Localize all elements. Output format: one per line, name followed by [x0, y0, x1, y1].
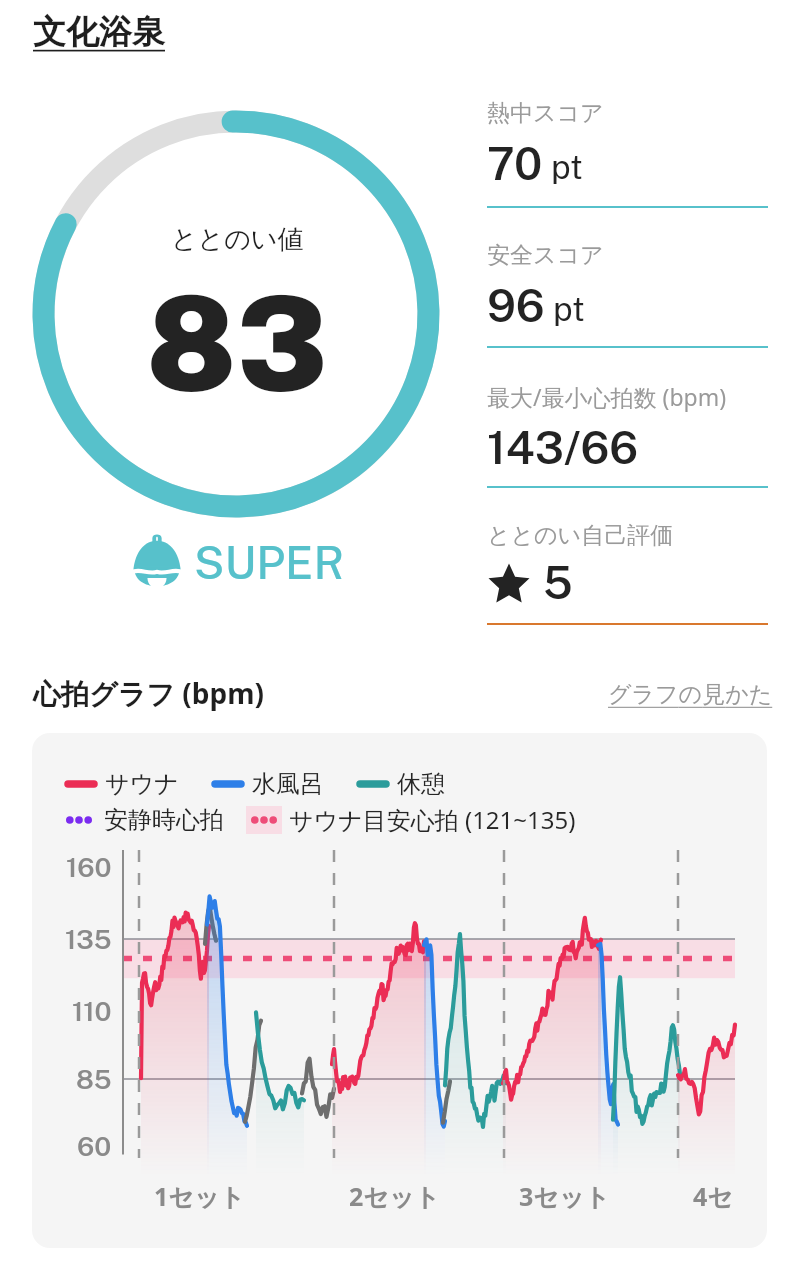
staticText: pt: [543, 148, 583, 187]
staticText: pt: [545, 290, 585, 329]
button[interactable]: 最大/最小心拍数 (bpm): [487, 348, 768, 488]
staticText: SUPER: [194, 536, 345, 589]
staticText: 最大/最小心拍数 (bpm): [487, 381, 727, 412]
staticText: 135: [65, 923, 112, 955]
staticText: 熱中スコア: [487, 99, 604, 128]
staticText: 水風呂: [252, 769, 324, 799]
button[interactable]: 文化浴泉: [33, 11, 165, 53]
staticText: 休憩: [397, 769, 445, 799]
staticText: 60: [77, 1130, 112, 1162]
staticText: 3セット: [519, 1179, 611, 1213]
staticText: 143/66: [487, 421, 639, 474]
staticText: 5: [543, 556, 573, 609]
button[interactable]: 安全スコア: [487, 208, 768, 348]
staticText: 160: [66, 851, 112, 883]
staticText: グラフの見かた: [608, 680, 773, 709]
staticText: 2セット: [349, 1179, 441, 1213]
button[interactable]: 熱中スコア: [487, 99, 768, 208]
staticText: 70: [487, 137, 543, 190]
staticText: ととのい値: [171, 223, 304, 256]
staticText: 110: [72, 995, 112, 1027]
staticText: ととのい自己評価: [487, 521, 674, 550]
staticText: サウナ目安心拍 (121~135): [289, 803, 576, 836]
staticText: 安全スコア: [487, 241, 604, 270]
button[interactable]: グラフの見かた: [608, 680, 773, 709]
staticText: 83: [146, 267, 328, 421]
staticText: 4セ: [693, 1179, 733, 1213]
staticText: 文化浴泉: [33, 11, 165, 53]
staticText: 96: [487, 279, 545, 332]
staticText: 85: [76, 1063, 112, 1095]
button[interactable]: ととのい自己評価: [487, 488, 768, 625]
staticText: 安静時心拍: [104, 805, 224, 835]
staticText: 心拍グラフ (bpm): [33, 674, 264, 712]
staticText: 1セット: [154, 1179, 246, 1213]
staticText: サウナ: [105, 769, 179, 799]
